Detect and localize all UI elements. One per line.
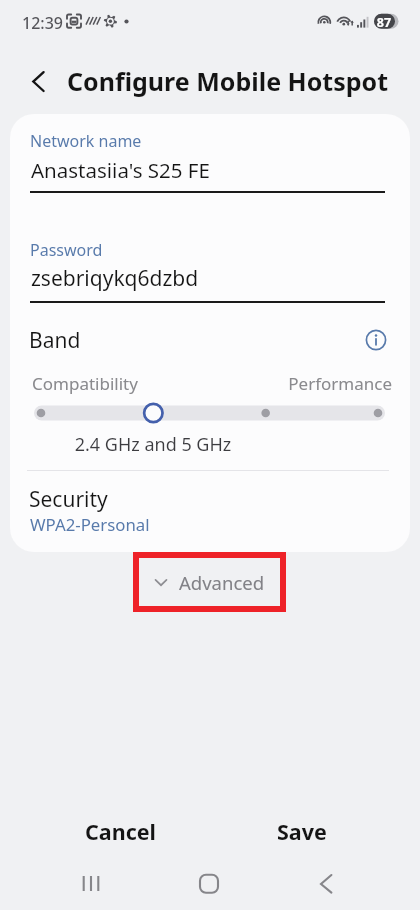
staticText: Save: [277, 817, 327, 846]
button[interactable]: Recent apps: [61, 862, 121, 906]
button[interactable]: About band: [361, 325, 391, 355]
staticText: 2.4 GHz and 5 GHz: [63, 432, 243, 457]
staticText: Configure Mobile Hotspot: [67, 64, 388, 98]
staticText: zsebriqykq6dzbd: [31, 264, 199, 293]
button[interactable]: Advanced: [133, 552, 286, 612]
staticText: Anastasiia's S25 FE: [31, 156, 210, 184]
staticText: Password: [30, 239, 103, 261]
staticText: 87: [373, 14, 395, 31]
staticText: Network name: [30, 130, 142, 152]
staticText: Band: [29, 326, 81, 355]
staticText: WPA2-Personal: [30, 513, 150, 536]
staticText: Cancel: [85, 817, 156, 846]
staticText: Advanced: [179, 570, 265, 595]
button[interactable]: Home: [179, 862, 239, 906]
staticText: Performance: [260, 372, 392, 395]
staticText: Security: [29, 485, 108, 514]
button[interactable]: Back: [296, 862, 356, 906]
button[interactable]: Save: [221, 805, 382, 857]
staticText: 12:39: [22, 12, 63, 34]
button[interactable]: Navigate up: [20, 62, 58, 100]
button[interactable]: Cancel: [40, 805, 201, 857]
staticText: Compatibility: [32, 372, 138, 395]
